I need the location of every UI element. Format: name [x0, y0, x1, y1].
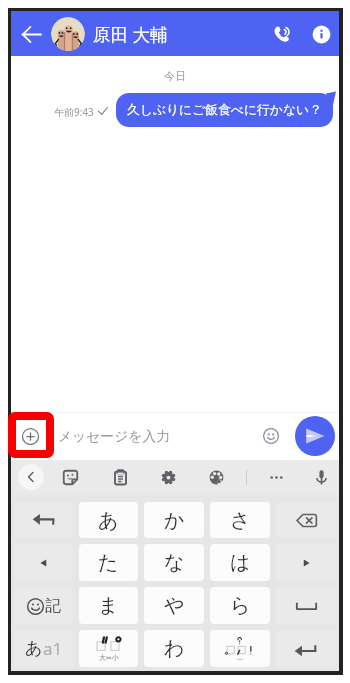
staticText: や	[164, 593, 185, 618]
staticText: た	[98, 550, 119, 575]
staticText: 午前9:43	[54, 105, 94, 119]
button[interactable]: LEFT	[14, 544, 73, 581]
button[interactable]: Collapse toolbar	[18, 464, 44, 490]
staticText: a1	[43, 637, 63, 660]
button[interactable]: Insert emoji	[257, 422, 285, 450]
button[interactable]: Send message	[295, 416, 335, 456]
button[interactable]: Settings	[155, 464, 181, 490]
button[interactable]: や	[144, 587, 204, 624]
staticText: 久しぶりにご飯食べに行かない？	[127, 102, 322, 118]
staticText: あ	[98, 508, 119, 533]
button[interactable]: Voice input	[308, 464, 334, 490]
button[interactable]: た	[79, 544, 138, 581]
button[interactable]: な	[144, 544, 204, 581]
button[interactable]: EMOJI_KI	[14, 587, 73, 624]
button[interactable]: BACKSPACE	[276, 502, 336, 538]
staticText: 記	[45, 596, 61, 616]
button[interactable]: Themes	[203, 464, 229, 490]
button[interactable]: SPACE	[276, 587, 336, 624]
button[interactable]: MODE	[14, 630, 73, 667]
button[interactable]: RIGHT	[276, 544, 336, 581]
button[interactable]: さ	[210, 502, 270, 538]
staticText: は	[230, 550, 251, 575]
button[interactable]: は	[210, 544, 270, 581]
button[interactable]: Conversation info	[306, 19, 336, 49]
button[interactable]: Clipboard	[107, 464, 133, 490]
staticText: わ	[164, 636, 185, 661]
button[interactable]: わ	[144, 630, 204, 667]
button[interactable]: ENTER_ARROW	[14, 502, 73, 538]
staticText: あ	[25, 638, 43, 659]
button[interactable]: あ	[79, 502, 138, 538]
button[interactable]: RETURN	[276, 630, 336, 667]
button[interactable]: ら	[210, 587, 270, 624]
staticText: 大⇔小	[99, 653, 119, 662]
button[interactable]: Voice call	[267, 19, 297, 49]
staticText: ら	[230, 593, 251, 618]
button[interactable]: Back	[15, 18, 47, 50]
staticText: 今日	[164, 69, 186, 83]
button[interactable]: ま	[79, 587, 138, 624]
button[interactable]: More options	[263, 464, 289, 490]
button[interactable]: DAKUTEN	[79, 630, 138, 667]
button[interactable]: か	[144, 502, 204, 538]
staticText: メッセージを入力	[58, 428, 170, 445]
button[interactable]: Add attachment	[16, 422, 44, 450]
button[interactable]: PUNCT	[210, 630, 270, 667]
staticText: 原田 大輔	[93, 22, 168, 46]
staticText: か	[164, 508, 185, 533]
staticText: さ	[230, 508, 251, 533]
staticText: ま	[98, 593, 119, 618]
staticText: な	[164, 550, 185, 575]
button[interactable]: Stickers	[57, 464, 83, 490]
